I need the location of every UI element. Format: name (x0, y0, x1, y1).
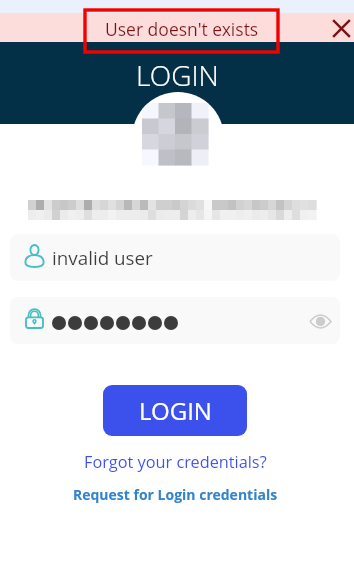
staticText: User doesn't exists (105, 17, 259, 41)
button[interactable]: Show password (10, 297, 340, 344)
button[interactable]: Close (327, 14, 354, 43)
button[interactable]: Request for Login credentials (65, 481, 285, 507)
button[interactable]: invalid user (10, 234, 340, 281)
button[interactable]: LOGIN (103, 385, 247, 436)
staticText: Request for Login credentials (73, 485, 278, 504)
staticText: LOGIN (136, 56, 219, 94)
staticText: Forgot your credentials? (84, 451, 267, 473)
staticText: LOGIN (139, 394, 212, 427)
staticText: invalid user (52, 245, 153, 271)
button[interactable]: Forgot your credentials? (78, 448, 272, 476)
button[interactable]: Show password (303, 304, 337, 338)
button[interactable]: User doesn't exists (85, 10, 278, 52)
